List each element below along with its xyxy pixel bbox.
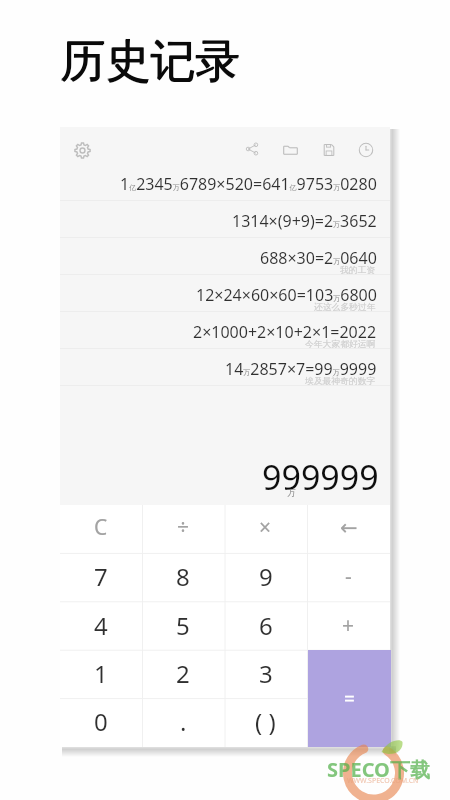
button[interactable]: 4 [60, 603, 142, 651]
staticText: 还这么多秒过年 [314, 302, 376, 313]
staticText: 2×1000+2×10+2×1=2022 [193, 321, 377, 343]
button[interactable]: 1314×(9+9)=2万3652 [60, 201, 390, 238]
staticText: 5 [176, 609, 190, 642]
staticText: ( ) [255, 705, 276, 738]
staticText: WWW.SPECO.COM.CN [347, 776, 419, 786]
button[interactable]: - [307, 554, 390, 603]
staticText: ÷ [177, 513, 190, 542]
button[interactable]: 1 [60, 651, 142, 699]
staticText: 埃及最神奇的数字 [305, 376, 376, 387]
staticText: = [344, 686, 355, 712]
staticText: 1亿2345万6789×520=641亿9753万0280 [120, 173, 377, 195]
staticText: 2 [176, 657, 190, 690]
staticText: 历史记录 [60, 33, 240, 90]
button[interactable]: × [224, 505, 307, 554]
staticText: × [259, 513, 272, 542]
staticText: 0 [94, 705, 108, 738]
button[interactable]: 688×30=2万0640 [60, 238, 390, 275]
button[interactable]: History [358, 142, 374, 158]
staticText: ← [340, 516, 358, 540]
button[interactable]: Folder [282, 142, 299, 159]
button[interactable] [307, 699, 390, 747]
staticText: 4 [94, 609, 108, 642]
button[interactable]: 14万2857×7=99万9999 [60, 349, 390, 386]
button[interactable]: 8 [142, 554, 224, 603]
staticText: C [94, 513, 108, 542]
staticText: 1 [94, 657, 108, 690]
staticText: 万 [287, 487, 296, 498]
staticText: 14万2857×7=99万9999 [225, 358, 377, 380]
staticText: - [345, 562, 352, 591]
staticText: 9 [259, 560, 273, 593]
button[interactable]: 0 [60, 699, 142, 747]
staticText: 我的工资 [340, 265, 376, 276]
staticText: 999999 [262, 454, 379, 500]
button[interactable]: Settings [74, 142, 91, 159]
button[interactable]: 7 [60, 554, 142, 603]
button[interactable]: Save [321, 142, 337, 158]
button[interactable]: ( ) [224, 699, 307, 747]
button[interactable]: 5 [142, 603, 224, 651]
staticText: 历史记录 [60, 34, 240, 91]
staticText: 3 [259, 657, 273, 690]
button[interactable]: 1亿2345万6789×520=641亿9753万0280 [60, 164, 390, 201]
staticText: 历史记录 [61, 33, 241, 90]
button[interactable]: 9 [224, 554, 307, 603]
button[interactable]: C [60, 505, 142, 554]
button[interactable]: = [308, 650, 391, 747]
staticText: 1314×(9+9)=2万3652 [232, 210, 377, 232]
button[interactable]: 2 [142, 651, 224, 699]
button[interactable]: 12×24×60×60=103万6800 [60, 275, 390, 312]
button[interactable]: Share [245, 142, 259, 156]
button[interactable]: 6 [224, 603, 307, 651]
staticText: SPECO下载 [327, 756, 430, 783]
button[interactable]: ÷ [142, 505, 224, 554]
staticText: 6 [259, 609, 273, 642]
staticText: 今年大家都好运啊 [305, 339, 376, 350]
staticText: + [342, 611, 355, 640]
staticText: 8 [176, 560, 190, 593]
staticText: . [180, 705, 187, 738]
staticText: 7 [94, 560, 108, 593]
button[interactable]: + [307, 603, 390, 651]
button[interactable]: 2×1000+2×10+2×1=2022 [60, 312, 390, 349]
staticText: 688×30=2万0640 [260, 247, 377, 269]
button[interactable]: . [142, 699, 224, 747]
button[interactable] [307, 651, 390, 699]
button[interactable]: 3 [224, 651, 307, 699]
button[interactable]: ← [307, 505, 390, 554]
staticText: 12×24×60×60=103万6800 [196, 284, 377, 306]
